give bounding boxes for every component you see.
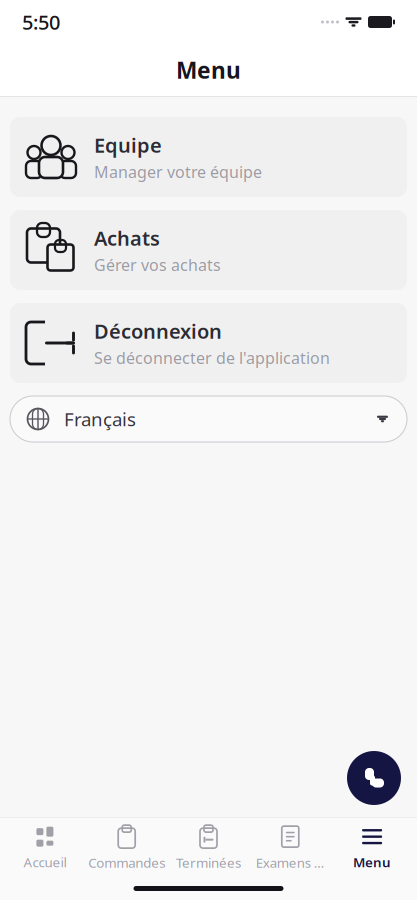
button[interactable]: Menu: [0, 44, 417, 96]
button[interactable]: Français: [10, 396, 407, 442]
staticText: Equipe: [94, 132, 162, 158]
staticText: Menu: [176, 55, 241, 85]
staticText: Français: [64, 407, 136, 431]
staticText: Examens …: [256, 854, 325, 871]
staticText: Commandes: [88, 854, 165, 871]
staticText: Manager votre équipe: [94, 161, 262, 182]
staticText: 5:50: [22, 9, 60, 35]
button[interactable]: Appeler: [345, 749, 403, 807]
button[interactable]: Déconnexion: [10, 303, 407, 383]
button[interactable]: Menu: [331, 822, 413, 874]
button[interactable]: Commandes: [86, 822, 168, 874]
staticText: Se déconnecter de l'application: [94, 347, 330, 368]
staticText: Accueil: [23, 853, 66, 871]
staticText: Gérer vos achats: [94, 254, 221, 275]
button[interactable]: Equipe: [10, 117, 407, 197]
button[interactable]: Examens …: [249, 822, 331, 874]
button[interactable]: Terminées: [168, 822, 249, 874]
staticText: Menu: [353, 853, 391, 871]
staticText: Terminées: [176, 854, 241, 871]
button[interactable]: Accueil: [4, 822, 86, 874]
button[interactable]: Achats: [10, 210, 407, 290]
staticText: Déconnexion: [94, 318, 222, 344]
staticText: Achats: [94, 225, 160, 251]
